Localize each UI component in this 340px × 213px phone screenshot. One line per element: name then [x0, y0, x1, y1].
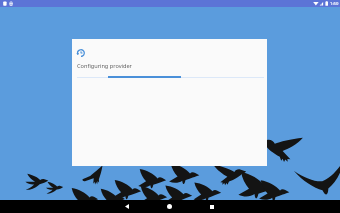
button[interactable]: Back: [112, 200, 142, 213]
button[interactable]: Home: [154, 200, 184, 213]
staticText: 1:50: [330, 1, 339, 7]
staticText: Configuring provider: [77, 62, 132, 70]
button[interactable]: Recent apps: [197, 200, 227, 213]
